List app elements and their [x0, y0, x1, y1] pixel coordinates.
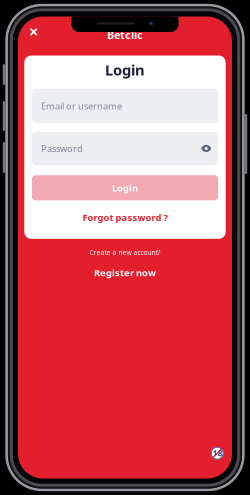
staticText: Login: [105, 60, 145, 79]
staticText: Register now: [94, 266, 156, 279]
button[interactable]: Close: [24, 22, 44, 42]
staticText: Create a new account?: [89, 248, 160, 257]
button[interactable]: Forgot password ?: [82, 209, 167, 225]
button[interactable]: Login: [32, 175, 218, 200]
staticText: Login: [112, 182, 138, 194]
staticText: 18: [213, 448, 223, 458]
staticText: Password: [41, 142, 83, 155]
button[interactable]: Show password: [201, 143, 212, 154]
staticText: Email or username: [41, 100, 122, 112]
button[interactable]: Register now: [94, 266, 156, 280]
staticText: Forgot password ?: [82, 211, 167, 224]
staticText: Betclic: [107, 28, 143, 42]
